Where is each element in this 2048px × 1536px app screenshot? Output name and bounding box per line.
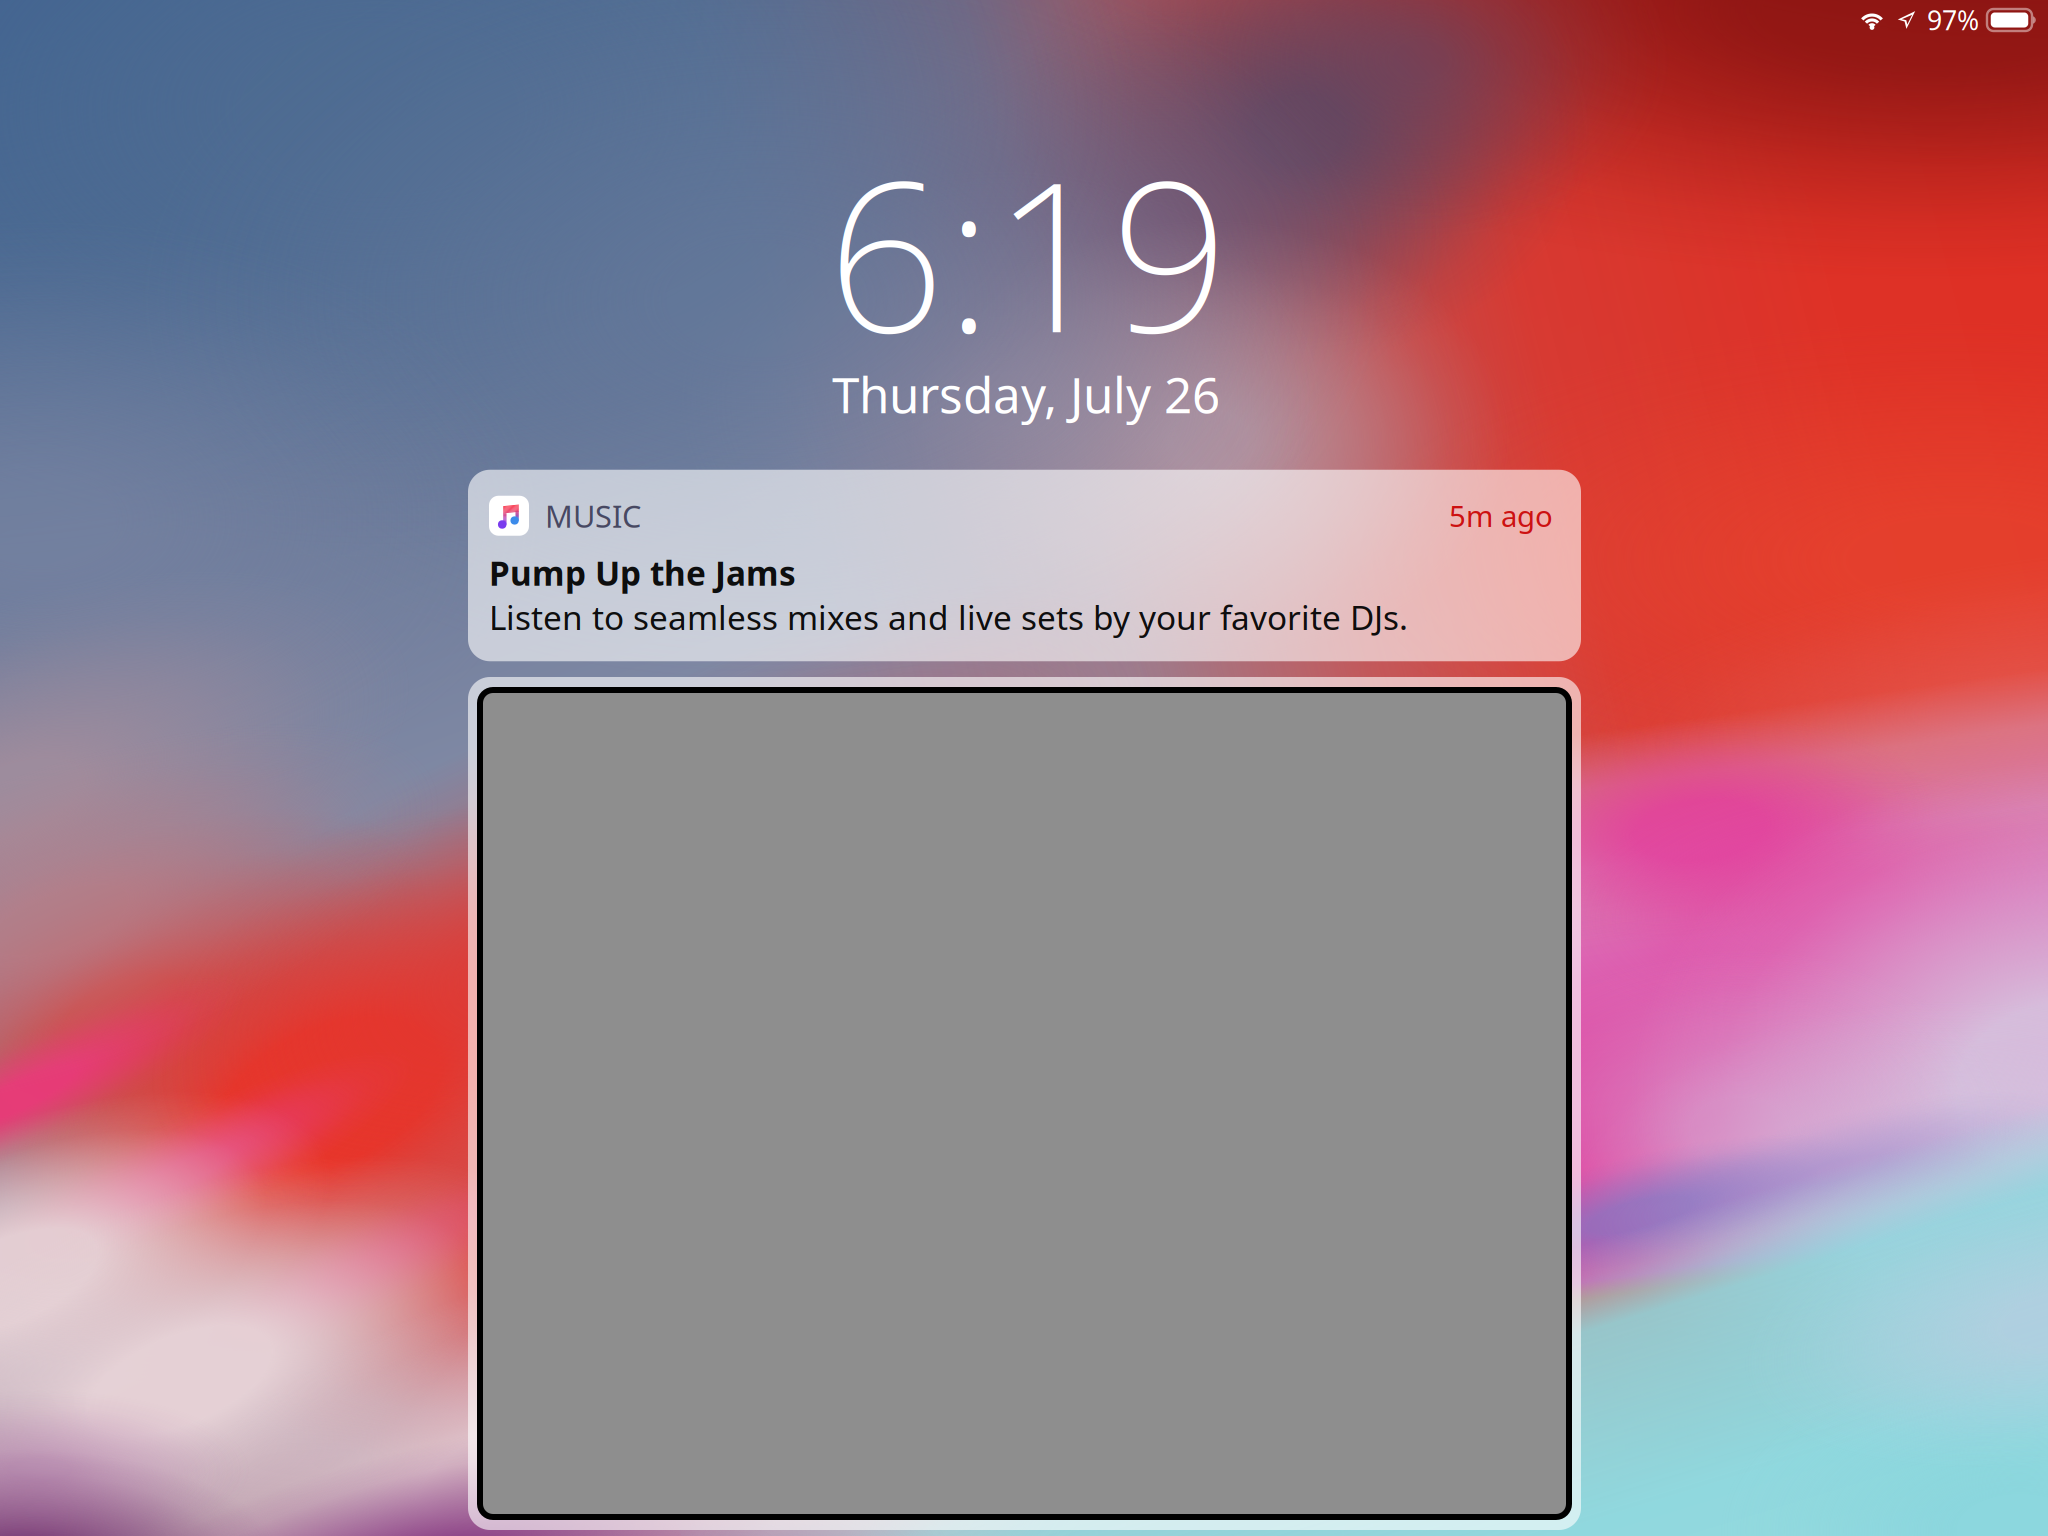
staticText: Listen to seamless mixes and live sets b…	[489, 595, 1408, 639]
staticText: MUSIC	[545, 495, 641, 536]
staticText: Thursday, July 26	[832, 361, 1220, 427]
staticText: 97%	[1927, 2, 1979, 38]
button[interactable]: Notification attachment	[468, 677, 1581, 1530]
button[interactable]: MUSIC	[468, 470, 1581, 661]
staticText: 6:19	[827, 115, 1229, 389]
staticText: Pump Up the Jams	[489, 551, 796, 595]
staticText: 5m ago	[1449, 496, 1553, 535]
